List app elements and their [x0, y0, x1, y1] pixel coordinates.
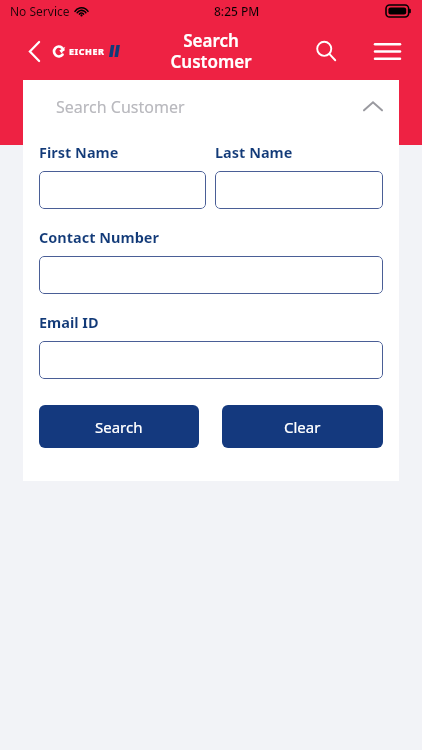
- staticText: Search: [95, 417, 143, 437]
- staticText: Last Name: [215, 142, 293, 162]
- staticText: EICHER: [69, 45, 105, 57]
- staticText: Email ID: [39, 312, 99, 332]
- button[interactable]: Search: [307, 32, 345, 70]
- staticText: Contact Number: [39, 227, 159, 247]
- staticText: First Name: [39, 142, 119, 162]
- button[interactable]: [39, 171, 206, 209]
- button[interactable]: Search Customer: [56, 80, 382, 133]
- button[interactable]: Clear: [222, 405, 383, 448]
- button[interactable]: Search: [39, 405, 199, 448]
- button[interactable]: Menu: [367, 31, 407, 71]
- button[interactable]: [215, 171, 383, 209]
- staticText: No Service: [10, 3, 70, 19]
- staticText: Clear: [284, 417, 321, 437]
- button[interactable]: [39, 256, 383, 294]
- button[interactable]: Back: [17, 34, 51, 68]
- staticText: Search Customer: [136, 29, 286, 73]
- button[interactable]: [39, 341, 383, 379]
- staticText: 8:25 PM: [214, 3, 260, 19]
- staticText: Search Customer: [56, 96, 185, 118]
